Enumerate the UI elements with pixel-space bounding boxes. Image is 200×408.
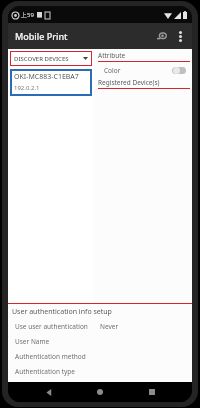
staticText: Authentication method xyxy=(15,352,86,361)
staticText: Use user authentication xyxy=(15,322,88,331)
staticText: OKI-MC883-C1EBA7 xyxy=(14,72,79,82)
staticText: User Name xyxy=(15,337,50,346)
button[interactable]: Recent apps xyxy=(141,382,163,402)
button[interactable]: OKI-MC883-C1EBA7 xyxy=(10,69,92,96)
button[interactable]: Home xyxy=(89,382,111,402)
button[interactable]: Use user authentication xyxy=(12,321,192,332)
staticText: Never xyxy=(100,322,119,331)
button[interactable]: Color xyxy=(98,62,190,78)
staticText: 192.0.2.1 xyxy=(14,84,40,92)
staticText: User authentication info setup xyxy=(12,307,112,317)
staticText: 上59 xyxy=(21,11,34,19)
button[interactable]: User Name xyxy=(12,336,192,347)
button[interactable]: Authentication method xyxy=(12,351,192,362)
staticText: DISCOVER DEVICES xyxy=(14,55,69,63)
button[interactable]: More options xyxy=(172,28,188,44)
staticText: Attribute xyxy=(98,51,126,60)
button[interactable]: Back xyxy=(38,382,60,402)
button[interactable]: Print settings xyxy=(153,27,171,45)
staticText: Authentication type xyxy=(15,367,75,376)
button[interactable]: DISCOVER DEVICES xyxy=(10,51,92,66)
staticText: Color xyxy=(104,66,121,75)
button[interactable]: Authentication type xyxy=(12,366,192,377)
staticText: Registered Device(s) xyxy=(98,78,160,87)
staticText: Mobile Print xyxy=(15,30,68,42)
